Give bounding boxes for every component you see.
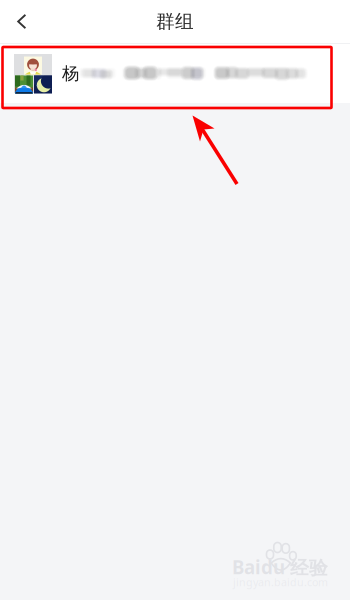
button[interactable]: Back [0, 0, 44, 43]
staticText: 群组 [156, 10, 194, 33]
staticText: 杨 [62, 63, 79, 84]
button[interactable]: 杨 [0, 44, 350, 103]
staticText: Baidu 经验 [232, 555, 328, 579]
